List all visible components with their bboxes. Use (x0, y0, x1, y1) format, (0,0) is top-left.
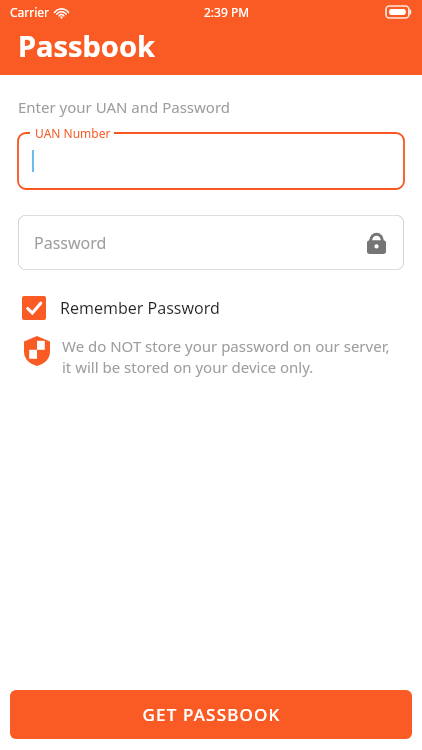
button[interactable]: Remember Password (22, 296, 220, 320)
staticText: Remember Password (60, 297, 220, 319)
staticText: Enter your UAN and Password (18, 97, 231, 117)
staticText: Passbook (18, 26, 156, 65)
button[interactable]: GET PASSBOOK (10, 690, 412, 739)
staticText: GET PASSBOOK (142, 703, 281, 726)
staticText: We do NOT store your password on our ser… (62, 336, 402, 378)
other: Password visibility (367, 231, 386, 254)
staticText: 2:39 PM (204, 4, 250, 20)
button[interactable]: Password (18, 215, 404, 270)
staticText: Carrier (10, 4, 50, 20)
button[interactable]: UAN Number (18, 133, 404, 189)
staticText: Password (34, 232, 107, 254)
staticText: UAN Number (35, 125, 111, 141)
